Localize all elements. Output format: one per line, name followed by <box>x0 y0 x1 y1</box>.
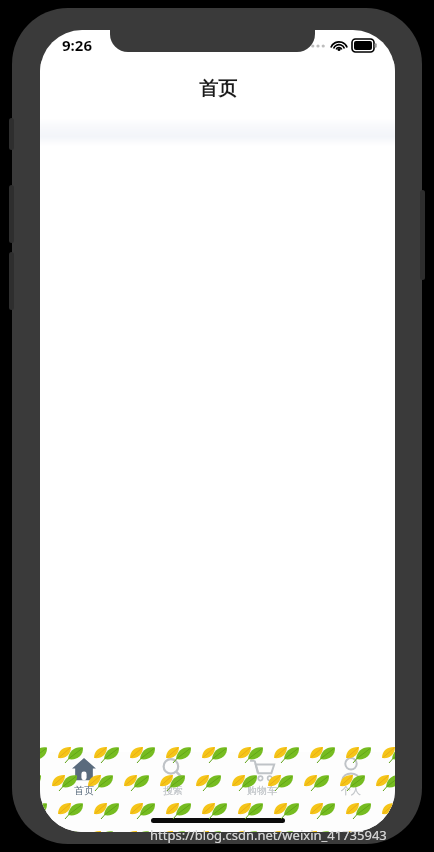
staticText: 9:26 <box>62 35 92 55</box>
button[interactable]: 购物车 <box>217 752 306 804</box>
button[interactable]: 搜索 <box>128 752 217 804</box>
staticText: 购物车 <box>247 784 277 797</box>
staticText: 首页 <box>199 77 237 101</box>
staticText: 首页 <box>74 784 94 797</box>
staticText: 个人 <box>341 784 361 797</box>
staticText: 搜索 <box>163 784 183 797</box>
button[interactable]: 个人 <box>306 752 395 804</box>
other: 购物车 <box>249 756 275 782</box>
other: 搜索 <box>160 756 186 782</box>
button[interactable]: 首页 <box>40 752 128 804</box>
other: 个人 <box>338 756 364 782</box>
other: 首页 <box>71 756 97 782</box>
staticText: https://blog.csdn.net/weixin_41735943 <box>150 826 387 844</box>
